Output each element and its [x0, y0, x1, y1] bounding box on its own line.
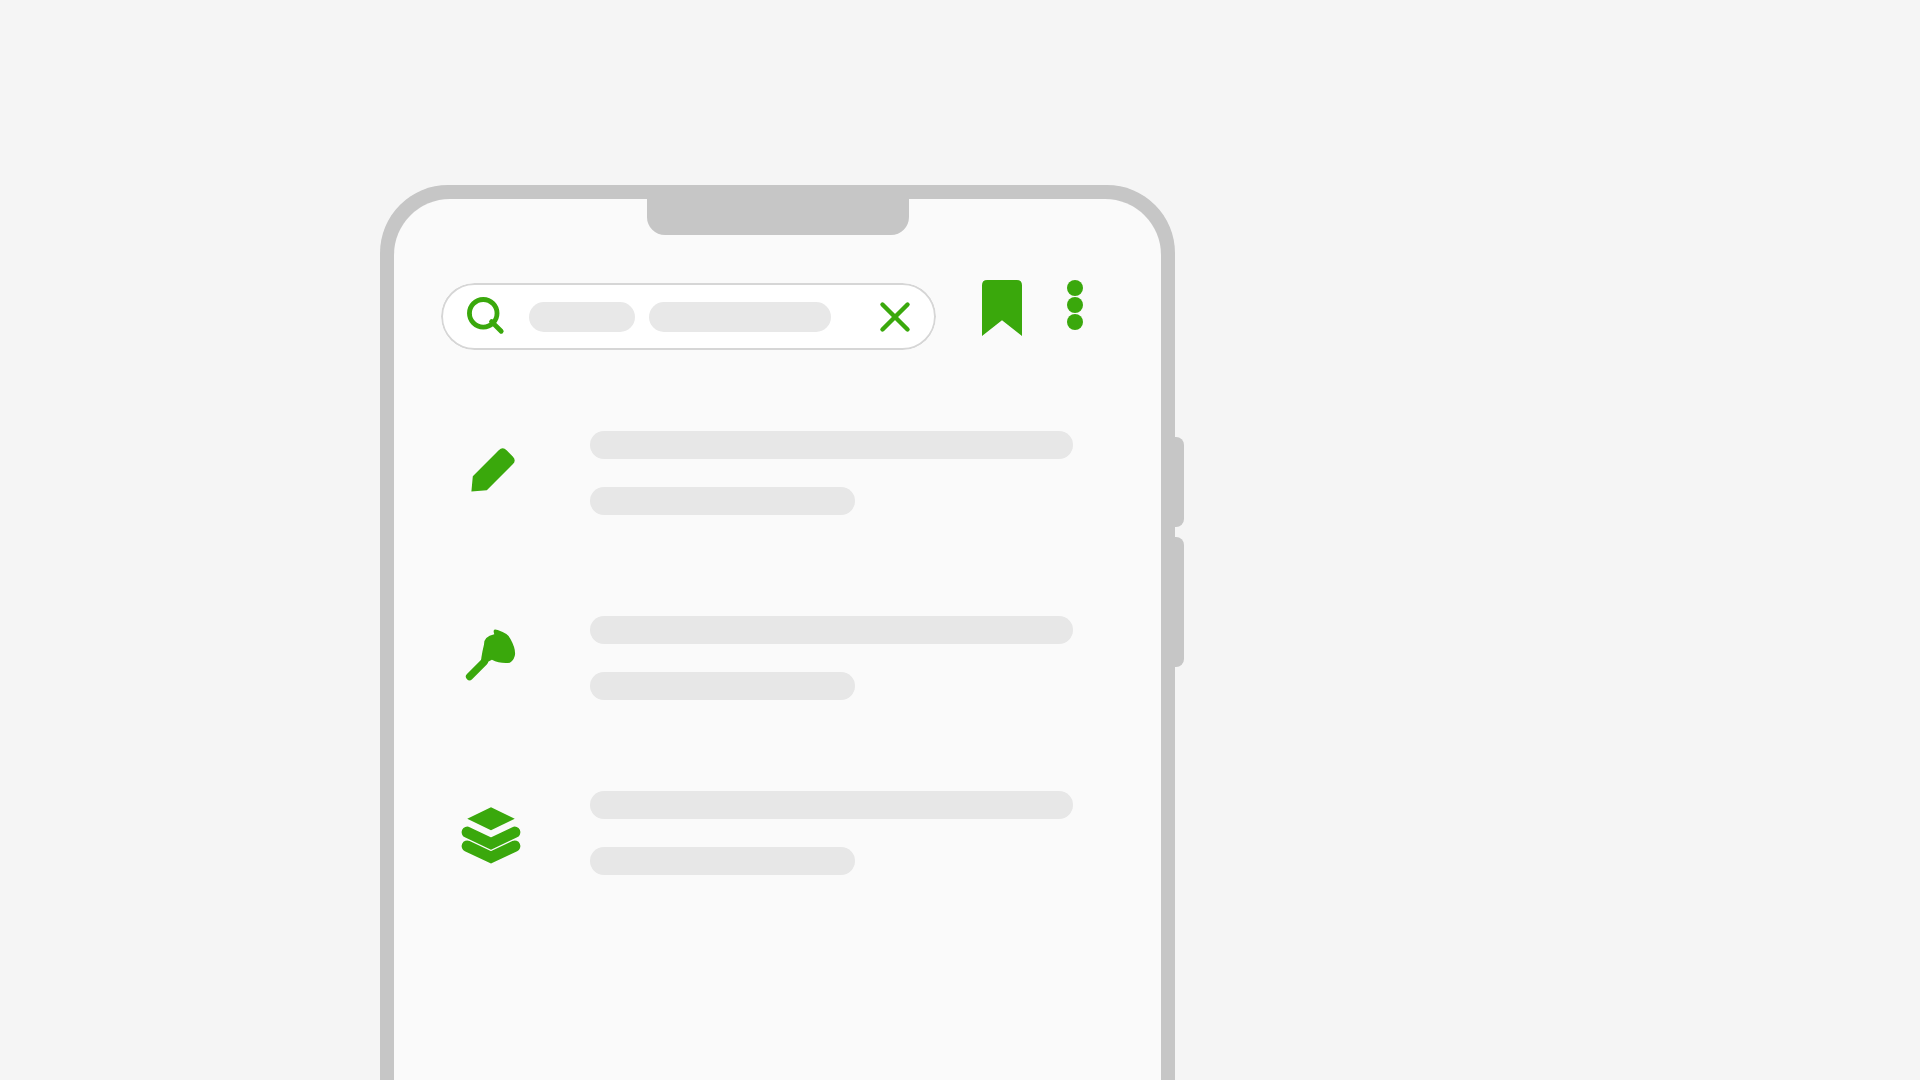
button[interactable]: Clear search: [872, 294, 918, 340]
button[interactable]: Bookmark: [972, 278, 1032, 338]
button[interactable]: More options: [1050, 280, 1100, 330]
button[interactable]: Layers: [394, 769, 1161, 899]
other: Search: [463, 294, 509, 340]
button[interactable]: Pin: [394, 594, 1161, 724]
button[interactable]: Search: [441, 283, 936, 350]
button[interactable]: Edit: [394, 409, 1161, 539]
